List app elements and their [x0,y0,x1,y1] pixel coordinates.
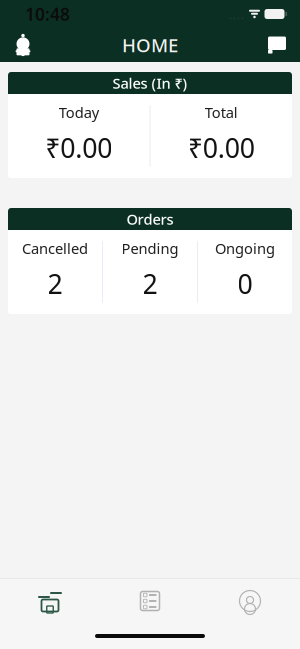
button[interactable]: Messages [254,28,300,62]
staticText: 2 [142,266,157,301]
staticText: ₹0.00 [45,130,112,165]
staticText: 2 [47,266,62,301]
button[interactable]: Orders [100,579,200,623]
staticText: HOME [122,33,178,57]
staticText: ₹0.00 [188,130,255,165]
staticText: 0 [237,266,252,301]
staticText: 10:48 [25,2,70,25]
staticText: Today [59,103,99,122]
staticText: Orders [126,209,173,229]
staticText: Total [205,103,238,122]
staticText: Sales (In ₹) [112,73,187,93]
staticText: Pending [121,239,178,258]
button[interactable]: Notifications [0,28,46,62]
staticText: Ongoing [215,239,275,258]
button[interactable]: Home [0,579,100,623]
button[interactable]: Profile [200,579,300,623]
staticText: Cancelled [22,239,88,258]
